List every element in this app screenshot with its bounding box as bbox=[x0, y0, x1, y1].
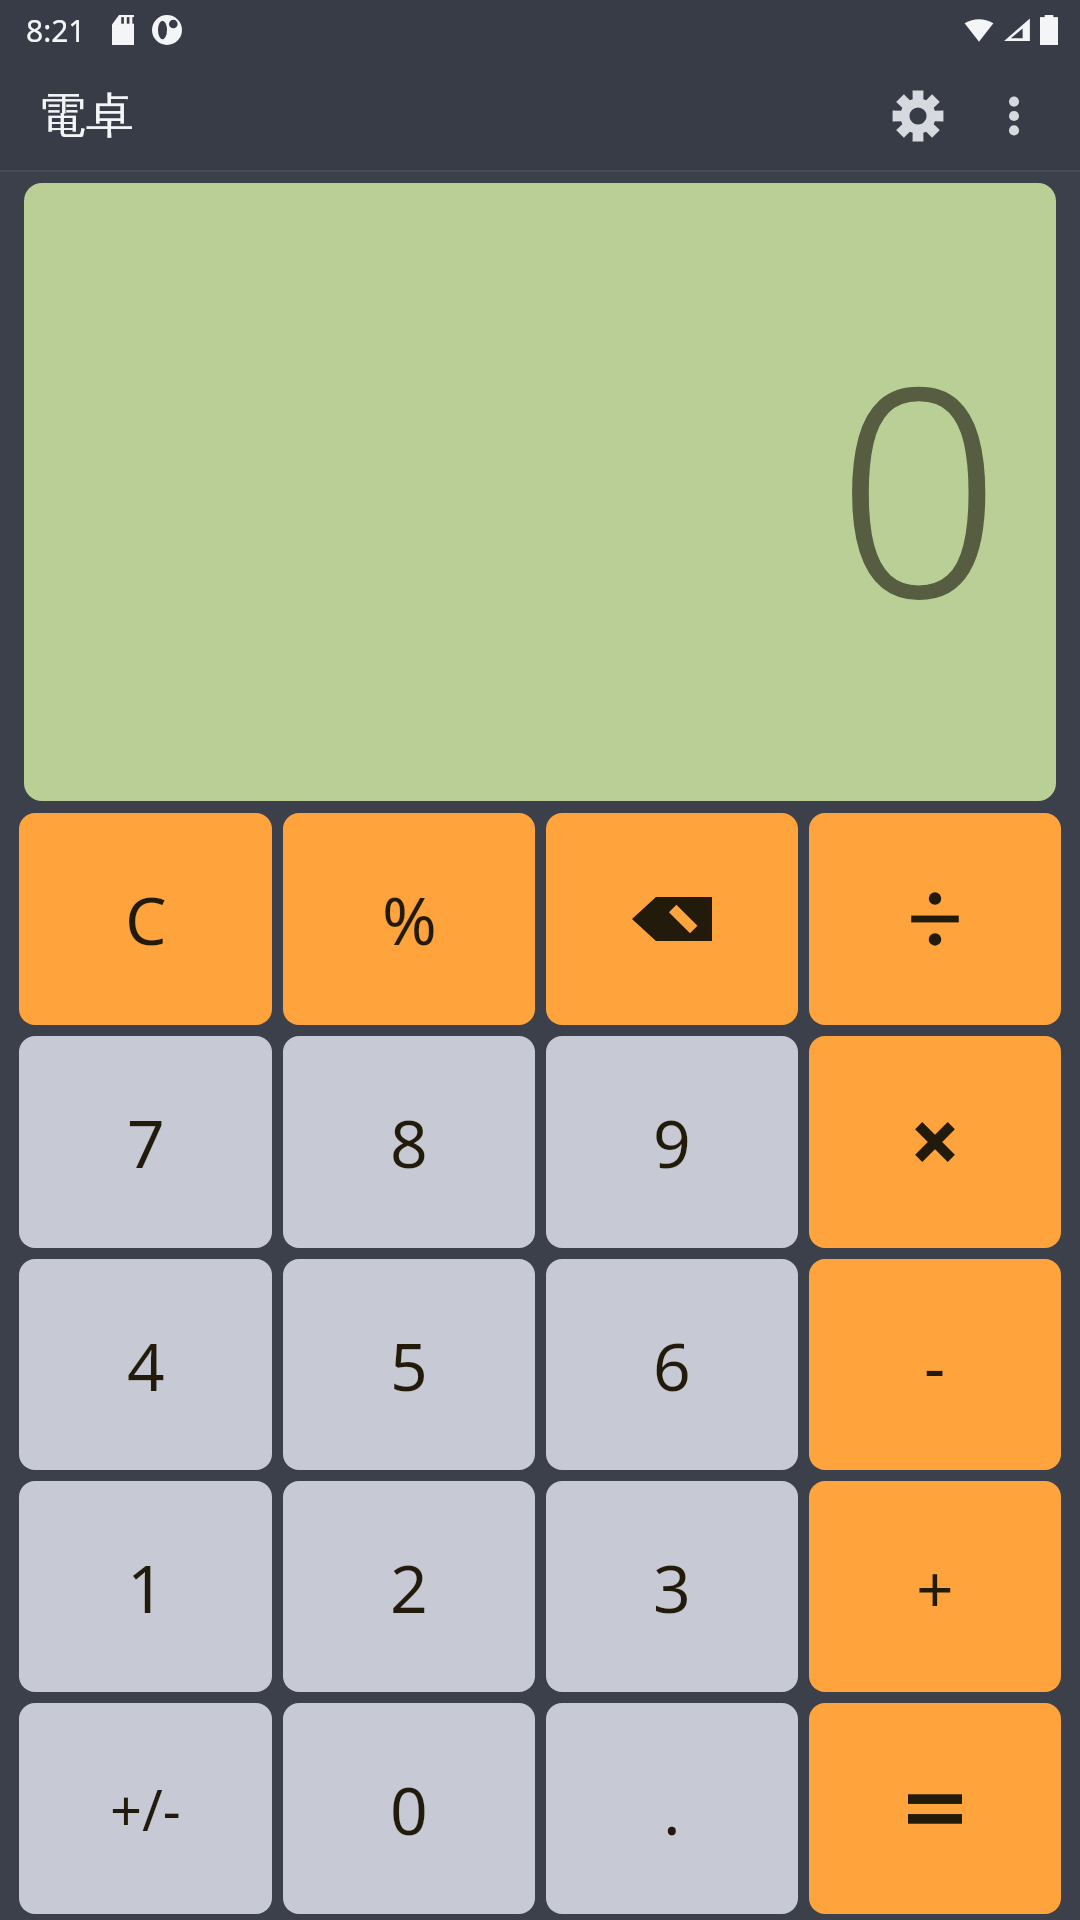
button[interactable]: 6 bbox=[546, 1259, 798, 1470]
button[interactable]: C bbox=[19, 813, 272, 1025]
button[interactable]: - bbox=[809, 1259, 1061, 1470]
button[interactable]: 7 bbox=[19, 1036, 272, 1248]
staticText: . bbox=[663, 1764, 681, 1854]
staticText: C bbox=[125, 874, 167, 964]
staticText: % bbox=[382, 874, 437, 964]
button[interactable]: 2 bbox=[283, 1481, 535, 1692]
button[interactable]: 9 bbox=[546, 1036, 798, 1248]
button[interactable]: 0 bbox=[24, 183, 1056, 801]
staticText: 3 bbox=[653, 1542, 691, 1632]
button[interactable]: 5 bbox=[283, 1259, 535, 1470]
staticText: + bbox=[916, 1542, 954, 1632]
staticText: 電卓 bbox=[38, 86, 134, 146]
button[interactable]: % bbox=[283, 813, 535, 1025]
staticText: 4 bbox=[127, 1320, 165, 1410]
button[interactable]: Divide bbox=[809, 813, 1061, 1025]
button[interactable]: Equals bbox=[809, 1703, 1061, 1914]
button[interactable]: Backspace bbox=[546, 813, 798, 1025]
button[interactable]: +/- bbox=[19, 1703, 272, 1914]
staticText: +/- bbox=[110, 1771, 181, 1847]
button[interactable]: + bbox=[809, 1481, 1061, 1692]
staticText: 2 bbox=[390, 1542, 428, 1632]
button[interactable]: More options bbox=[966, 68, 1062, 164]
button[interactable]: 1 bbox=[19, 1481, 272, 1692]
button[interactable]: . bbox=[546, 1703, 798, 1914]
staticText: 0 bbox=[390, 1764, 428, 1854]
staticText: 7 bbox=[127, 1097, 165, 1187]
button[interactable]: 8 bbox=[283, 1036, 535, 1248]
button[interactable]: 0 bbox=[283, 1703, 535, 1914]
button[interactable]: 4 bbox=[19, 1259, 272, 1470]
staticText: 6 bbox=[653, 1320, 691, 1410]
staticText: 1 bbox=[127, 1542, 165, 1632]
staticText: 9 bbox=[653, 1097, 691, 1187]
button[interactable]: 3 bbox=[546, 1481, 798, 1692]
staticText: 5 bbox=[390, 1320, 428, 1410]
staticText: 8 bbox=[390, 1097, 428, 1187]
button[interactable]: Settings bbox=[870, 68, 966, 164]
staticText: - bbox=[924, 1320, 946, 1410]
button[interactable]: Multiply bbox=[809, 1036, 1061, 1248]
staticText: 8:21 bbox=[26, 10, 86, 51]
staticText: 0 bbox=[836, 287, 1002, 682]
